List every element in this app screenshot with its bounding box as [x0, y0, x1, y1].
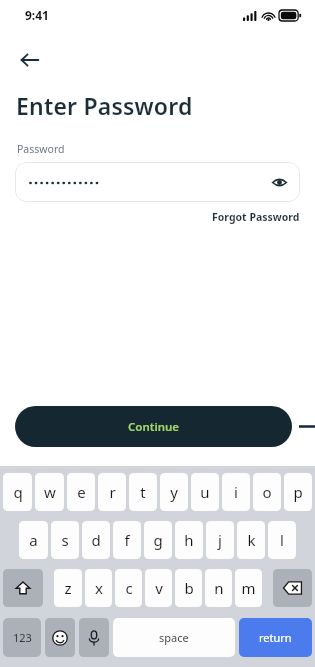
- button[interactable]: b: [175, 569, 202, 607]
- button[interactable]: p: [284, 473, 312, 511]
- button[interactable]: Dictate: [79, 618, 109, 657]
- staticText: a: [29, 530, 38, 550]
- button[interactable]: x: [85, 569, 112, 607]
- staticText: y: [170, 482, 178, 502]
- button[interactable]: k: [237, 521, 265, 559]
- button[interactable]: r: [98, 473, 126, 511]
- button[interactable]: a: [19, 521, 48, 559]
- button[interactable]: j: [206, 521, 234, 559]
- staticText: t: [140, 482, 146, 502]
- staticText: p: [293, 482, 303, 502]
- button[interactable]: e: [67, 473, 95, 511]
- button[interactable]: Forgot Password: [212, 210, 300, 224]
- staticText: Enter Password: [16, 90, 193, 121]
- button[interactable]: 123: [3, 618, 41, 657]
- staticText: 9:41: [25, 7, 49, 23]
- staticText: d: [91, 530, 101, 550]
- button[interactable]: o: [253, 473, 281, 511]
- staticText: j: [218, 530, 222, 550]
- button[interactable]: l: [268, 521, 296, 559]
- button[interactable]: Shift: [3, 569, 43, 607]
- staticText: z: [64, 578, 72, 598]
- button[interactable]: Emoji: [45, 618, 75, 657]
- staticText: r: [109, 482, 116, 502]
- staticText: b: [184, 578, 194, 598]
- staticText: l: [280, 530, 284, 550]
- button[interactable]: q: [3, 473, 32, 511]
- button[interactable]: Show password: [15, 162, 300, 202]
- button[interactable]: m: [235, 569, 262, 607]
- button[interactable]: t: [129, 473, 157, 511]
- button[interactable]: g: [144, 521, 172, 559]
- button[interactable]: c: [115, 569, 142, 607]
- button[interactable]: i: [222, 473, 250, 511]
- staticText: o: [262, 482, 272, 502]
- button[interactable]: Backspace: [273, 569, 312, 607]
- button[interactable]: space: [113, 618, 235, 657]
- staticText: n: [214, 578, 224, 598]
- button[interactable]: Continue: [15, 406, 292, 447]
- staticText: h: [184, 530, 194, 550]
- button[interactable]: u: [191, 473, 219, 511]
- staticText: f: [124, 530, 130, 550]
- button[interactable]: n: [205, 569, 232, 607]
- staticText: e: [77, 482, 86, 502]
- staticText: Password: [17, 142, 65, 156]
- staticText: Continue: [128, 419, 180, 435]
- button[interactable]: Back: [13, 43, 47, 77]
- button[interactable]: Show password: [266, 169, 292, 195]
- button[interactable]: h: [175, 521, 203, 559]
- staticText: v: [155, 578, 163, 598]
- button[interactable]: z: [54, 569, 82, 607]
- staticText: 123: [13, 630, 32, 645]
- staticText: q: [13, 482, 23, 502]
- staticText: space: [159, 630, 189, 645]
- staticText: c: [125, 578, 133, 598]
- staticText: w: [44, 482, 56, 502]
- button[interactable]: s: [51, 521, 79, 559]
- staticText: m: [241, 578, 256, 598]
- staticText: u: [200, 482, 210, 502]
- staticText: s: [61, 530, 69, 550]
- staticText: return: [259, 630, 292, 645]
- button[interactable]: y: [160, 473, 188, 511]
- staticText: k: [247, 530, 256, 550]
- staticText: Forgot Password: [212, 210, 300, 224]
- button[interactable]: return: [239, 618, 312, 657]
- staticText: g: [153, 530, 163, 550]
- button[interactable]: w: [35, 473, 64, 511]
- staticText: x: [95, 578, 103, 598]
- button[interactable]: d: [82, 521, 110, 559]
- button[interactable]: v: [145, 569, 172, 607]
- button[interactable]: f: [113, 521, 141, 559]
- staticText: i: [234, 482, 238, 502]
